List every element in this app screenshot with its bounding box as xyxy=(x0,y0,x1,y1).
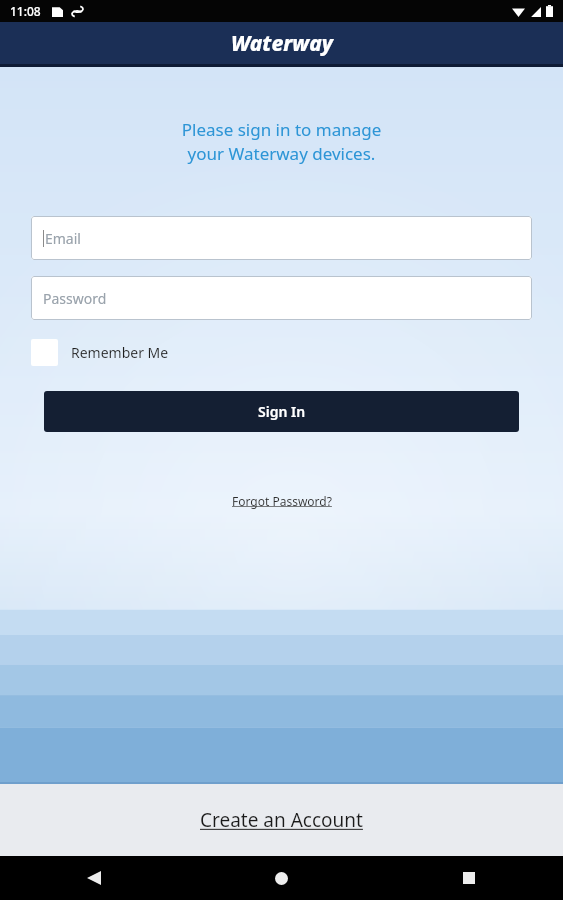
staticText: Please sign in to manage your Waterway d… xyxy=(0,118,563,165)
staticText: Email xyxy=(45,229,81,248)
staticText: Create an Account xyxy=(200,807,363,833)
button[interactable]: Forgot Password? xyxy=(222,489,342,513)
button[interactable]: Home xyxy=(187,856,375,900)
button[interactable]: Email xyxy=(31,216,532,260)
button[interactable]: Create an Account xyxy=(0,784,563,856)
staticText: Waterway xyxy=(231,29,333,58)
button[interactable]: Password xyxy=(31,276,532,320)
button[interactable]: Recent apps xyxy=(375,856,563,900)
button[interactable]: Back xyxy=(0,856,187,900)
button[interactable]: Sign In xyxy=(44,391,519,432)
button[interactable]: Remember Me xyxy=(31,337,179,368)
staticText: Remember Me xyxy=(71,343,169,362)
staticText: Sign In xyxy=(258,402,306,421)
staticText: Password xyxy=(43,289,107,308)
staticText: 11:08 xyxy=(10,3,41,19)
